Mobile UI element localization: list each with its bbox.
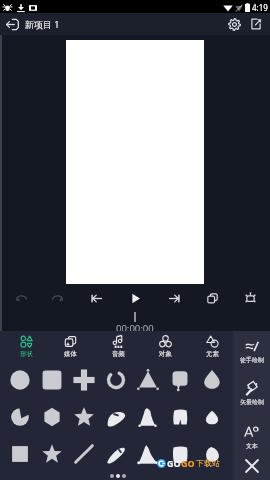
button[interactable]: Close (241, 455, 263, 477)
staticText: 媒体 (64, 350, 77, 358)
staticText: 00:00:00 (116, 322, 154, 335)
staticText: 形状 (20, 350, 33, 358)
staticText: 徒手绘制 (240, 356, 264, 364)
button[interactable]: Back (3, 15, 21, 33)
button[interactable]: Shape 15 (4, 438, 36, 470)
button[interactable]: Duplicate (202, 288, 222, 308)
button[interactable]: Shape 17 (68, 438, 100, 470)
button[interactable]: Shape 21 (196, 438, 228, 470)
button[interactable]: Skip to start (86, 288, 106, 308)
button[interactable]: Shape 5 (132, 364, 164, 396)
button[interactable]: Settings (224, 14, 244, 34)
button[interactable]: Shape 18 (100, 438, 132, 470)
staticText: 下载站 (196, 458, 220, 468)
button[interactable]: Shape 14 (196, 401, 228, 433)
staticText: GO (181, 457, 195, 469)
staticText: 4:19 (252, 2, 268, 13)
staticText: 对象 (159, 350, 172, 358)
button[interactable]: Shape 7 (196, 364, 228, 396)
button[interactable]: Shape 20 (164, 438, 196, 470)
button[interactable]: Shape 13 (164, 401, 196, 433)
staticText: GO (167, 457, 181, 469)
staticText: 文本 (246, 442, 258, 450)
button[interactable]: Export (246, 14, 266, 34)
button[interactable]: 矢量绘制 (233, 381, 270, 406)
button[interactable]: 文本 (233, 425, 270, 450)
staticText: 元素 (206, 350, 219, 358)
button[interactable]: Shape 6 (164, 364, 196, 396)
button[interactable]: Transform (240, 288, 260, 308)
button[interactable]: Shape 4 (100, 364, 132, 396)
button[interactable]: 媒体 (50, 335, 90, 358)
button[interactable]: Shape 8 (4, 401, 36, 433)
button[interactable]: Shape 2 (36, 364, 68, 396)
button[interactable]: Undo (11, 288, 31, 308)
button[interactable]: 徒手绘制 (233, 339, 270, 364)
button[interactable]: Shape 3 (68, 364, 100, 396)
button[interactable]: Shape 16 (36, 438, 68, 470)
button[interactable]: 音频 (98, 335, 138, 358)
button[interactable]: Shape 11 (100, 401, 132, 433)
button[interactable]: Shape 10 (68, 401, 100, 433)
button[interactable]: 元素 (192, 335, 232, 358)
staticText: 新项目 1 (25, 18, 60, 30)
staticText: 音频 (112, 350, 125, 358)
button[interactable]: Shape 1 (4, 364, 36, 396)
button[interactable]: Shape 19 (132, 438, 164, 470)
button[interactable]: 对象 (145, 335, 185, 358)
button[interactable]: Shape 9 (36, 401, 68, 433)
staticText: 矢量绘制 (240, 398, 264, 406)
button[interactable]: 形状 (6, 335, 46, 358)
button[interactable]: Play (125, 288, 145, 308)
button[interactable]: Skip to end (164, 288, 184, 308)
button[interactable]: Redo (47, 288, 67, 308)
button[interactable]: Shape 12 (132, 401, 164, 433)
